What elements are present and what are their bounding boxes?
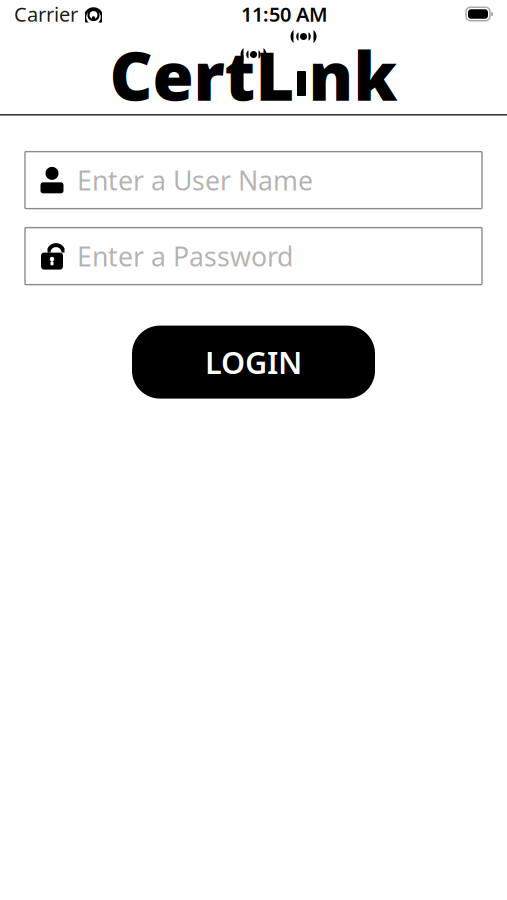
button[interactable]: LOGIN [132, 326, 375, 399]
staticText: nk [308, 31, 397, 119]
staticText: Enter a Password [77, 238, 293, 274]
staticText: Enter a User Name [77, 162, 313, 198]
button[interactable]: Enter a Password [25, 228, 482, 285]
staticText: CertL [109, 31, 294, 119]
button[interactable]: Enter a User Name [25, 152, 482, 209]
staticText: Carrier [14, 1, 78, 27]
staticText: 11:50 AM [241, 1, 328, 27]
staticText: LOGIN [205, 342, 302, 382]
